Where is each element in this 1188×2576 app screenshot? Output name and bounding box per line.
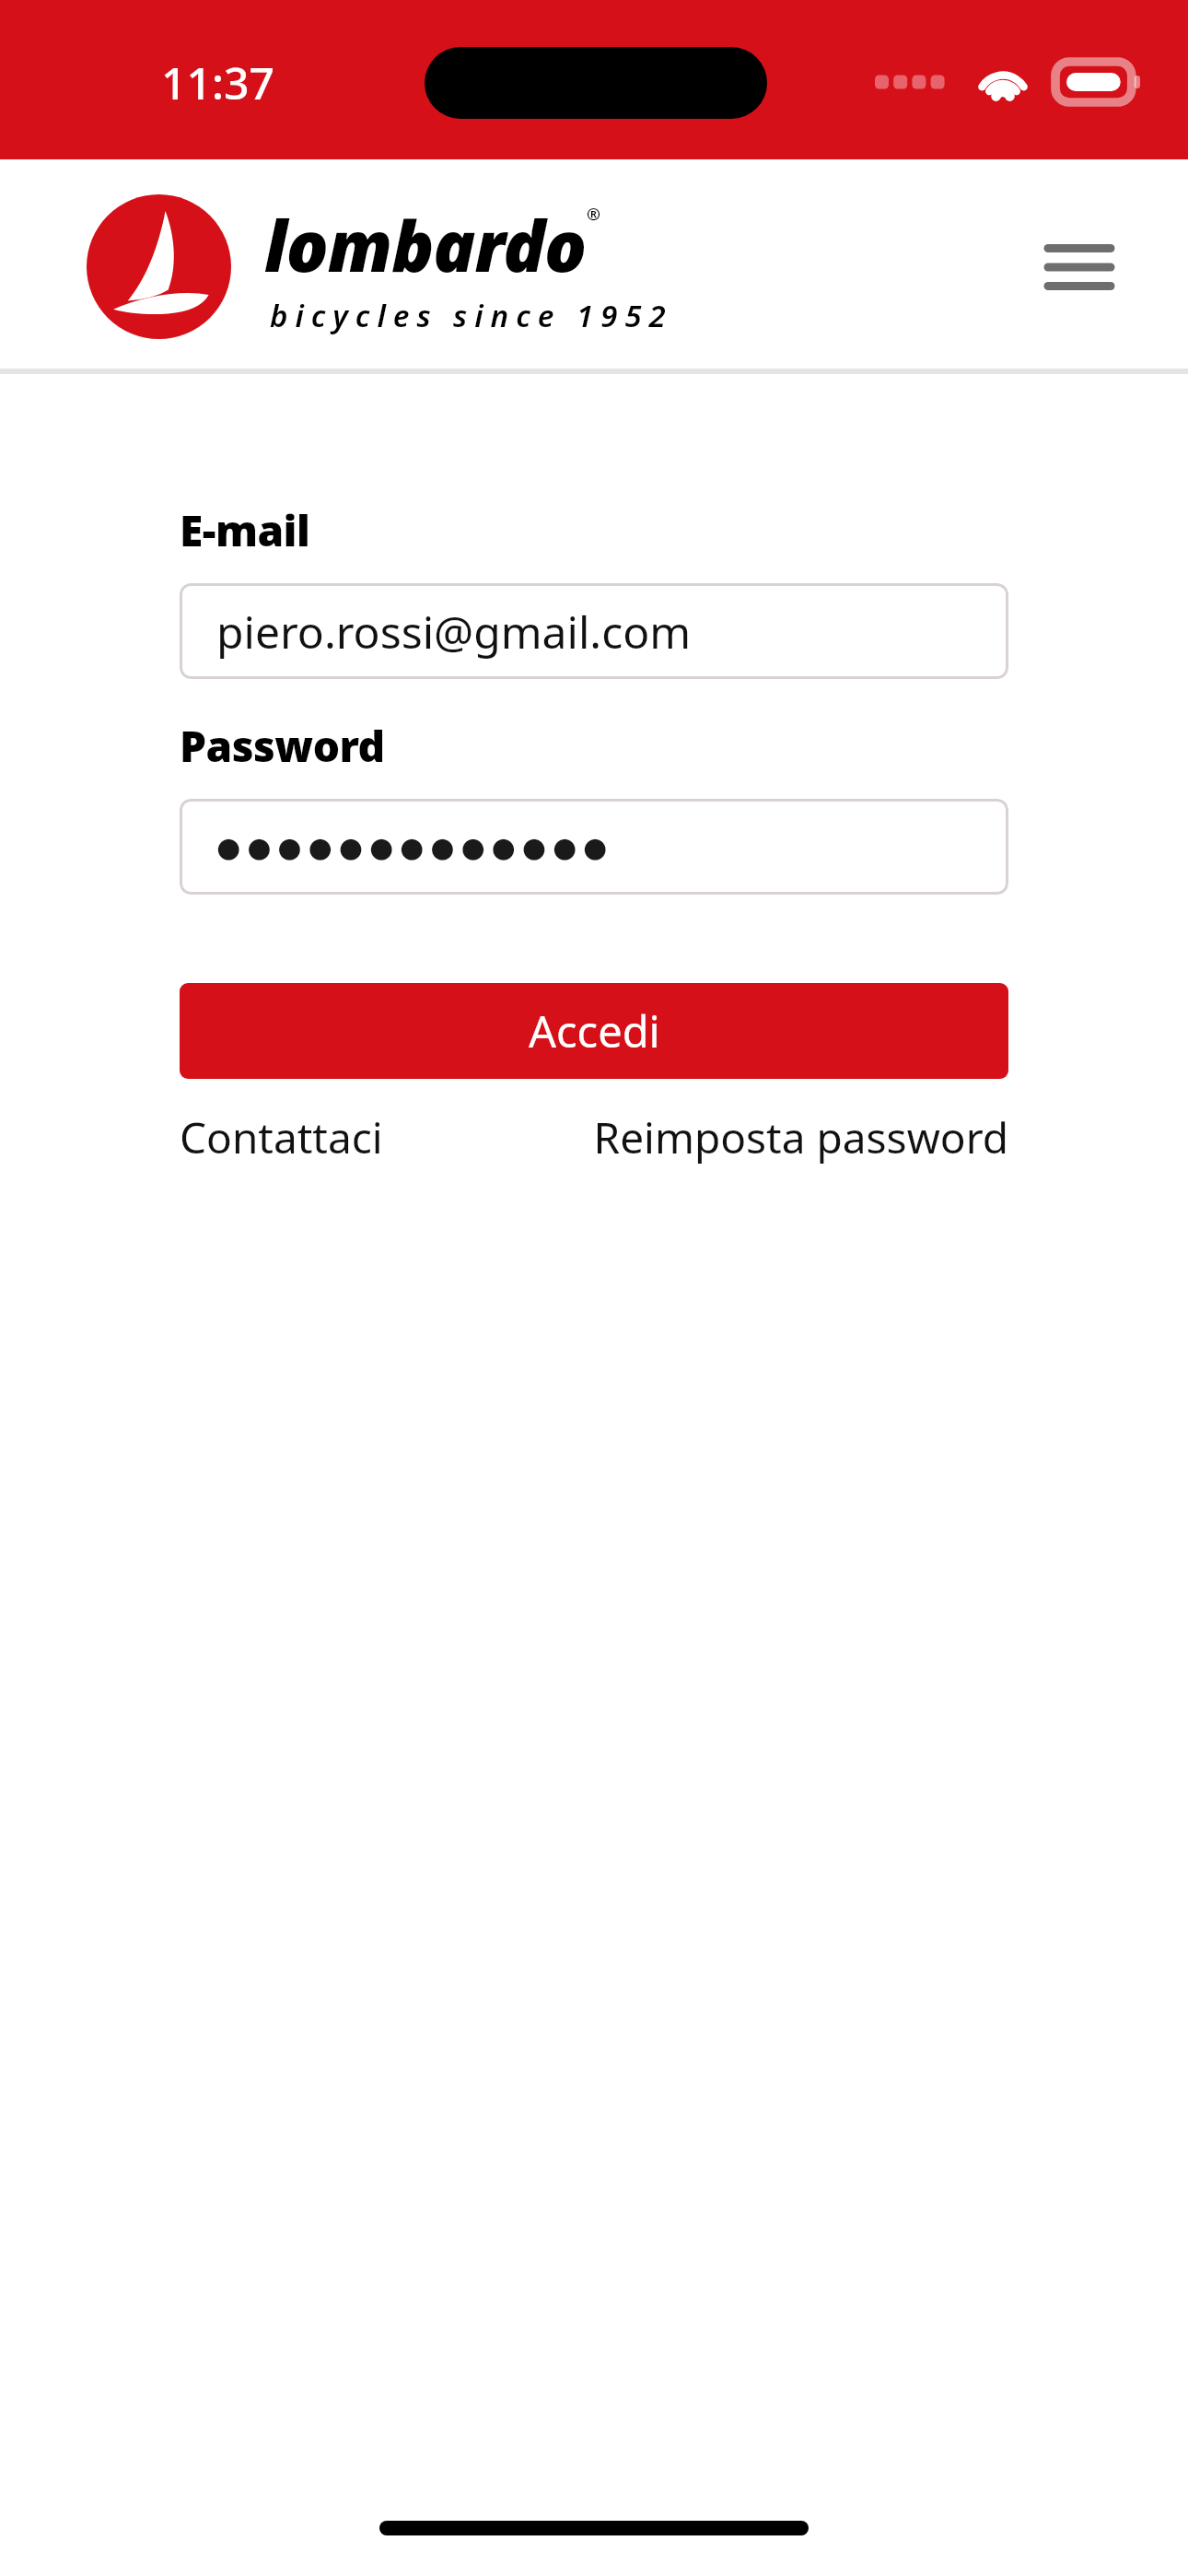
button[interactable]: piero.rossi@gmail.com	[180, 583, 1008, 679]
staticText: piero.rossi@gmail.com	[216, 602, 692, 662]
staticText: ●●●●●●●●●●●●●	[216, 831, 614, 863]
button[interactable]: Contattaci	[180, 1108, 383, 1166]
staticText: Contattaci	[180, 1108, 383, 1166]
staticText: bicycles since 1952	[270, 295, 673, 336]
button[interactable]: ●●●●●●●●●●●●●	[180, 799, 1008, 895]
staticText: Reimposta password	[593, 1108, 1008, 1166]
staticText: ®	[587, 203, 600, 226]
button[interactable]: Reimposta password	[593, 1108, 1008, 1166]
staticText: lombardo	[264, 197, 587, 293]
staticText: 11:37	[161, 53, 274, 112]
button[interactable]: Menu	[1035, 223, 1124, 311]
button[interactable]: Accedi	[180, 983, 1008, 1079]
staticText: E-mail	[180, 501, 310, 559]
staticText: Password	[180, 717, 385, 775]
staticText: Accedi	[529, 1001, 660, 1060]
